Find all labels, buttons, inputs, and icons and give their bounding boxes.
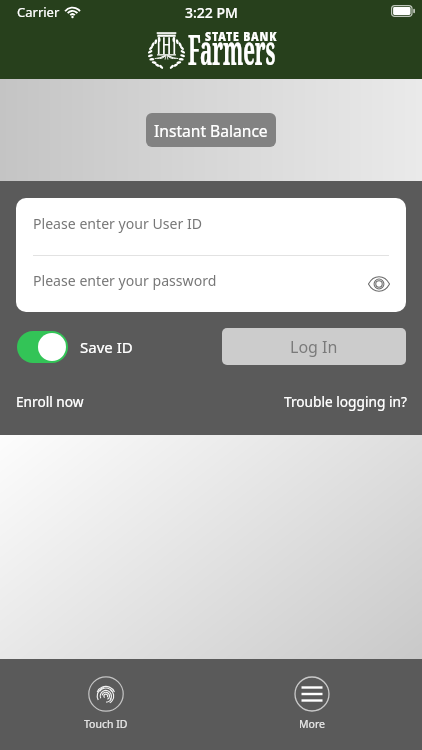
staticText: Enroll now <box>16 392 84 411</box>
button[interactable]: Show password <box>364 269 394 299</box>
button[interactable]: Log In <box>222 328 406 365</box>
staticText: STATE BANK <box>205 28 277 45</box>
button[interactable]: Please enter your User ID <box>16 198 406 255</box>
staticText: Save ID <box>80 337 133 357</box>
staticText: Farmers <box>188 21 275 69</box>
button[interactable]: Touch ID <box>84 676 128 731</box>
staticText: Please enter your User ID <box>33 214 203 233</box>
button[interactable]: More <box>294 676 330 731</box>
button[interactable]: Trouble logging in? <box>284 392 407 411</box>
staticText: Instant Balance <box>154 120 268 141</box>
staticText: More <box>299 717 325 731</box>
button[interactable]: Enroll now <box>16 392 84 411</box>
button[interactable]: Save ID <box>17 331 133 363</box>
staticText: 3:22 PM <box>185 3 238 22</box>
staticText: Log In <box>290 336 338 358</box>
staticText: Trouble logging in? <box>284 392 407 411</box>
staticText: Please enter your password <box>33 271 217 290</box>
staticText: Carrier <box>17 3 60 21</box>
staticText: Touch ID <box>84 717 128 731</box>
button[interactable]: Please enter your password <box>16 255 406 312</box>
button[interactable]: Instant Balance <box>146 113 276 147</box>
